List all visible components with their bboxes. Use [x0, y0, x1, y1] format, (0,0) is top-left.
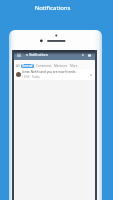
staticText: Jonas Nohhi and you are now friends — [22, 70, 76, 74]
staticText: Notifications — [29, 53, 48, 57]
staticText: Unread — [22, 64, 33, 68]
button[interactable]: More options — [87, 53, 91, 57]
button[interactable]: Search — [81, 53, 85, 57]
button[interactable]: Comments — [36, 64, 52, 68]
button[interactable]: Mentions — [54, 64, 68, 68]
staticText: Notifications — [0, 4, 109, 12]
staticText: 15:54 · Today — [22, 75, 40, 79]
button[interactable]: Jonas Nohhi and you are now friends — [14, 69, 95, 80]
button[interactable]: Menu — [17, 53, 21, 57]
button[interactable]: All — [16, 64, 20, 68]
button[interactable]: Unread — [21, 64, 34, 68]
button[interactable]: Dismiss — [89, 73, 93, 77]
button[interactable]: More — [70, 64, 78, 68]
